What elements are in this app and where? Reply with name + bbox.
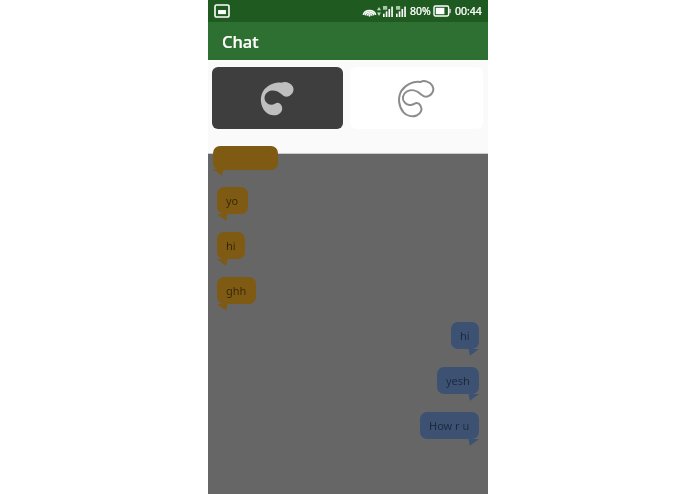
- staticText: hi: [226, 238, 236, 253]
- staticText: 00:44: [455, 4, 482, 18]
- button[interactable]: ghh: [217, 277, 256, 304]
- button[interactable]: hi: [451, 322, 479, 349]
- staticText: 80%: [410, 4, 431, 18]
- button[interactable]: hi: [217, 232, 245, 259]
- staticText: hi: [460, 328, 470, 343]
- button[interactable]: yesh: [437, 367, 479, 394]
- staticText: yesh: [446, 373, 470, 388]
- button[interactable]: Video call: [350, 67, 483, 129]
- button[interactable]: Voice call: [212, 67, 343, 129]
- button[interactable]: How r u: [420, 412, 479, 439]
- button[interactable]: yo: [217, 187, 248, 214]
- staticText: ghh: [226, 283, 247, 298]
- staticText: Chat: [222, 30, 259, 52]
- staticText: How r u: [429, 418, 470, 433]
- staticText: yo: [226, 193, 239, 208]
